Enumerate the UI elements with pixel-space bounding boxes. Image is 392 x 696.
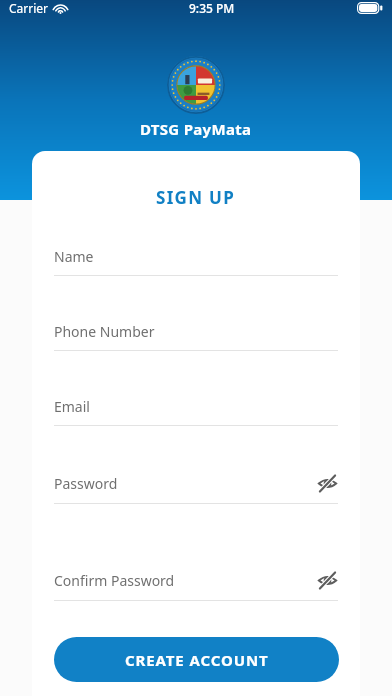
button[interactable]: CREATE ACCOUNT — [54, 637, 339, 682]
staticText: Password — [54, 474, 118, 493]
staticText: SIGN UP — [156, 186, 236, 209]
button[interactable]: Name — [54, 247, 338, 276]
button[interactable]: Confirm Password — [54, 569, 338, 601]
staticText: Name — [54, 247, 94, 266]
button[interactable]: Phone Number — [54, 322, 338, 351]
staticText: CREATE ACCOUNT — [125, 650, 269, 670]
button[interactable]: Email — [54, 397, 338, 426]
staticText: Email — [54, 397, 90, 416]
button[interactable]: Toggle password visibility — [316, 569, 338, 591]
staticText: 9:35 PM — [189, 0, 235, 16]
staticText: DTSG PayMata — [140, 119, 252, 139]
button[interactable]: Password — [54, 472, 338, 504]
staticText: Confirm Password — [54, 571, 175, 590]
staticText: Carrier — [9, 0, 49, 16]
staticText: Phone Number — [54, 322, 155, 341]
button[interactable]: Toggle password visibility — [316, 472, 338, 494]
